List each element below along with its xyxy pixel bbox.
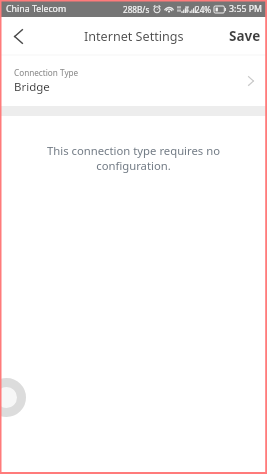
staticText: Connection Type xyxy=(14,67,79,78)
staticText: Bridge xyxy=(14,79,50,95)
staticText: China Telecom xyxy=(6,3,67,15)
staticText: 24% xyxy=(195,4,212,15)
staticText: 3:55 PM xyxy=(229,3,263,15)
button[interactable]: Connection Type xyxy=(0,56,267,106)
staticText: This connection type requires no configu… xyxy=(36,143,231,173)
button[interactable]: Save xyxy=(219,19,267,53)
staticText: Internet Settings xyxy=(84,28,184,45)
button[interactable]: Back xyxy=(0,17,37,54)
staticText: 288B/s xyxy=(123,4,150,15)
staticText: Save xyxy=(229,27,261,45)
